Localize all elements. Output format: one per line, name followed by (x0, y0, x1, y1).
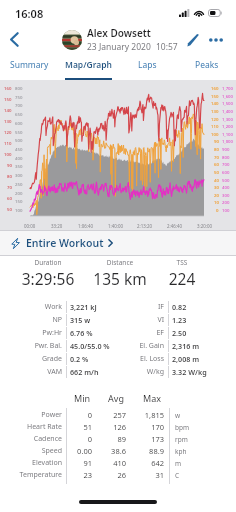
staticText: 1:40:00 (108, 223, 123, 229)
staticText: 1:06:40 (78, 223, 93, 229)
staticText: 16:08 (15, 6, 44, 21)
staticText: 200 (15, 190, 23, 196)
staticText: 0 (70, 434, 92, 444)
button[interactable]: More options (205, 29, 227, 51)
staticText: rpm (175, 435, 188, 444)
staticText: TSS (142, 258, 222, 267)
staticText: 0 (70, 410, 92, 420)
staticText: 50 (214, 169, 219, 175)
staticText: 1,500 (222, 100, 234, 106)
staticText: Power (10, 410, 62, 420)
staticText: 38.6 (102, 446, 126, 456)
staticText: 20 (214, 192, 219, 198)
staticText: 300 (15, 172, 23, 178)
staticText: 6.76 % (70, 328, 93, 338)
staticText: w (175, 411, 181, 420)
staticText: 650 (15, 111, 23, 117)
staticText: 89 (102, 434, 126, 444)
staticText: 120 (211, 116, 219, 122)
staticText: 2,008 m (172, 354, 200, 364)
staticText: 91 (70, 458, 92, 468)
staticText: 800 (222, 154, 230, 160)
staticText: Heart Rate (10, 422, 62, 432)
staticText: 3:20:00 (197, 223, 212, 229)
staticText: 135 km (80, 268, 160, 289)
staticText: Min (72, 392, 92, 404)
staticText: Max (140, 392, 164, 404)
staticText: 0 (216, 207, 219, 213)
staticText: 110 (4, 140, 12, 146)
staticText: 30 (214, 184, 219, 190)
staticText: Work (16, 302, 62, 312)
staticText: 900 (222, 146, 230, 152)
staticText: 410 (102, 458, 126, 468)
staticText: 26 (102, 470, 126, 480)
staticText: 33:20 (51, 223, 63, 229)
staticText: W/kg (116, 367, 164, 377)
staticText: 80 (7, 173, 12, 179)
staticText: 150 (4, 96, 12, 102)
staticText: 3:29:56 (8, 268, 88, 289)
staticText: 173 (134, 434, 164, 444)
staticText: 1,000 (222, 138, 234, 144)
button[interactable]: Entire Workout (0, 230, 236, 256)
staticText: EF (116, 328, 164, 338)
staticText: Elevation (10, 458, 62, 468)
staticText: 88.9 (134, 446, 164, 456)
staticText: 160 (4, 85, 12, 91)
staticText: 400 (222, 184, 230, 190)
button[interactable]: Laps (118, 55, 177, 81)
staticText: 1,300 (222, 116, 234, 122)
staticText: Pw:Hr (16, 328, 62, 338)
button[interactable]: Map/Graph (59, 55, 118, 81)
staticText: 224 (142, 268, 222, 289)
button[interactable]: Peaks (177, 55, 236, 81)
staticText: 100 (15, 207, 23, 213)
staticText: bpm (175, 423, 190, 432)
button[interactable]: Back (0, 24, 28, 55)
staticText: 750 (15, 94, 23, 100)
staticText: 550 (15, 129, 23, 135)
staticText: IF (116, 302, 164, 312)
staticText: 130 (4, 118, 12, 124)
staticText: Alex Dowsett (87, 26, 151, 40)
staticText: m (175, 459, 182, 468)
staticText: Avg (106, 392, 126, 404)
staticText: 45.0/55.0 % (70, 341, 110, 351)
staticText: 2,316 m (172, 341, 200, 351)
staticText: Grade (16, 354, 62, 364)
staticText: 300 (222, 192, 230, 198)
staticText: 31 (134, 470, 164, 480)
staticText: 3,221 kJ (70, 302, 97, 312)
button[interactable]: Summary (0, 55, 59, 81)
staticText: 100 (211, 131, 219, 137)
staticText: 600 (15, 120, 23, 126)
staticText: El. Gain (116, 341, 164, 351)
staticText: 10 (214, 199, 219, 205)
staticText: Map/Graph (65, 59, 112, 71)
staticText: 170 (134, 422, 164, 432)
staticText: Summary (10, 59, 49, 71)
staticText: 662 m/h (70, 367, 99, 377)
staticText: 1.23 (172, 315, 187, 325)
staticText: 90 (214, 138, 219, 144)
staticText: 00:00 (24, 223, 36, 229)
staticText: Entire Workout (26, 236, 104, 250)
staticText: 70 (214, 154, 219, 160)
staticText: 140 (4, 107, 12, 113)
staticText: 1,200 (222, 123, 234, 129)
staticText: 400 (15, 155, 23, 161)
staticText: VAM (16, 367, 62, 377)
staticText: Pwr. Bal. (16, 341, 62, 351)
staticText: 90 (7, 162, 12, 168)
staticText: 23 (70, 470, 92, 480)
staticText: 2:46:40 (167, 223, 182, 229)
button[interactable]: Edit (182, 29, 204, 51)
staticText: 3.32 W/kg (172, 367, 207, 377)
staticText: 200 (222, 199, 230, 205)
staticText: 1,815 (134, 410, 164, 420)
staticText: El. Loss (116, 354, 164, 364)
staticText: 642 (134, 458, 164, 468)
staticText: 160 (211, 85, 219, 91)
staticText: 60 (7, 195, 12, 201)
